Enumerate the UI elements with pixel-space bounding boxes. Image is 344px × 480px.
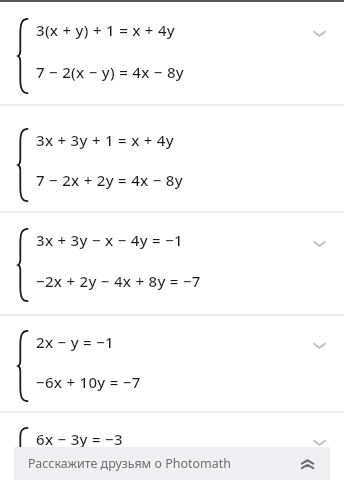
button[interactable]: Expand step bbox=[306, 429, 332, 455]
button[interactable]: Expand step bbox=[306, 332, 332, 358]
button[interactable]: Expand promo bbox=[294, 451, 320, 477]
button[interactable]: Expand step bbox=[306, 230, 332, 256]
staticText: 6x − 3y = −3 bbox=[36, 429, 123, 449]
button[interactable]: Расскажите друзьям о Photomath bbox=[14, 447, 330, 480]
staticText: Расскажите друзьям о Photomath bbox=[28, 455, 232, 472]
staticText: −6x + 10y = −7 bbox=[36, 372, 141, 392]
staticText: −2x + 2y − 4x + 8y = −7 bbox=[36, 271, 201, 291]
button[interactable]: 6x − 3y = −3 bbox=[0, 413, 344, 480]
staticText: 7 − 2x + 2y = 4x − 8y bbox=[36, 170, 183, 190]
button[interactable]: Expand step bbox=[306, 20, 332, 46]
staticText: 3x + 3y − x − 4y = −1 bbox=[36, 230, 183, 250]
button[interactable]: 3(x + y) + 1 = x + 4y bbox=[0, 2, 344, 104]
button[interactable]: 3x + 3y + 1 = x + 4y bbox=[0, 106, 344, 211]
staticText: 3(x + y) + 1 = x + 4y bbox=[36, 20, 176, 40]
staticText: 2x − y = −1 bbox=[36, 332, 114, 352]
staticText: −6x + 10y = −7 bbox=[36, 469, 141, 480]
staticText: 7 − 2(x − y) = 4x − 8y bbox=[36, 62, 185, 82]
staticText: 3x + 3y + 1 = x + 4y bbox=[36, 130, 174, 150]
button[interactable]: 2x − y = −1 bbox=[0, 316, 344, 411]
button[interactable]: 3x + 3y − x − 4y = −1 bbox=[0, 213, 344, 314]
